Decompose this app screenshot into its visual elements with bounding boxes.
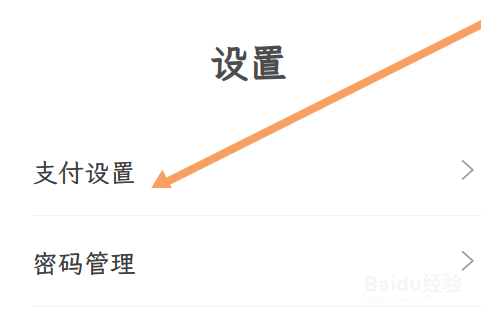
button[interactable]: 支付设置 bbox=[0, 124, 481, 215]
staticText: Baidu经验 bbox=[364, 268, 462, 297]
staticText: 密码管理 bbox=[32, 246, 136, 280]
button[interactable]: 密码管理 bbox=[0, 216, 481, 306]
staticText: 密码管理 bbox=[32, 246, 136, 280]
staticText: 设置 bbox=[209, 36, 287, 88]
staticText: 支付设置 bbox=[32, 156, 136, 189]
staticText: 设置 bbox=[210, 36, 288, 88]
staticText: 支付设置 bbox=[32, 155, 136, 189]
